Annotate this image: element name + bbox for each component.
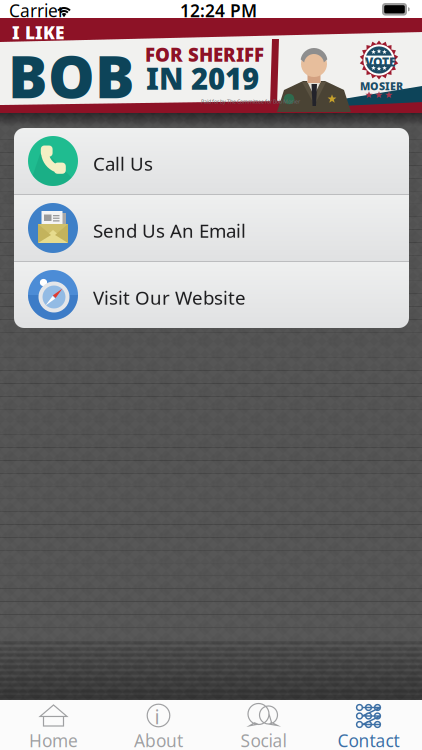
button[interactable]: Visit Our Website (14, 262, 409, 328)
staticText: Contact (337, 729, 399, 750)
staticText: Visit Our Website (93, 285, 246, 310)
staticText: IN 2019 (146, 59, 259, 98)
staticText: MOSIER (360, 79, 403, 93)
staticText: BOB (8, 36, 135, 114)
staticText: i (154, 703, 159, 730)
button[interactable]: Home (1, 700, 106, 750)
staticText: Carrier (9, 0, 65, 22)
staticText: Paid for by The Committee for Bob Mosier (201, 98, 300, 105)
staticText: I LIKE (12, 21, 65, 44)
staticText: Social (240, 729, 286, 750)
button[interactable]: i (106, 700, 211, 750)
staticText: 12:24 PM (180, 0, 257, 22)
staticText: FOR SHERIFF (145, 42, 264, 67)
button[interactable]: Call Us (14, 128, 409, 194)
staticText: About (134, 729, 183, 750)
staticText: Home (29, 729, 78, 750)
button[interactable]: Contact (316, 700, 421, 750)
button[interactable]: Send Us An Email (14, 195, 409, 261)
button[interactable]: Social (211, 700, 316, 750)
staticText: VOTE (365, 54, 396, 70)
staticText: Call Us (93, 151, 153, 176)
staticText: Send Us An Email (93, 218, 246, 243)
